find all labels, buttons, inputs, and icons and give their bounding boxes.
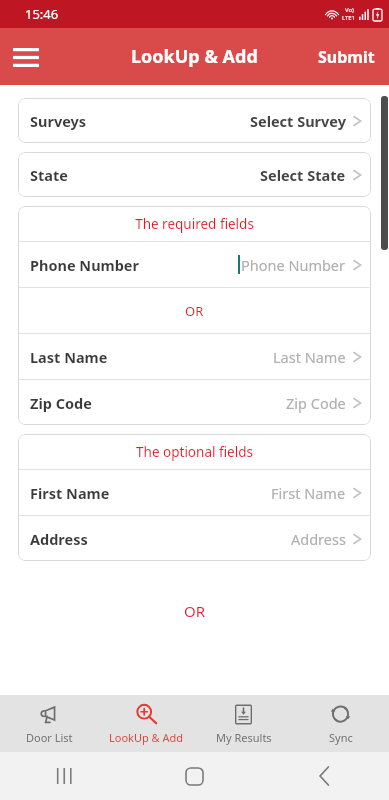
button[interactable]: Submit [318,46,375,68]
staticText: Last Name [30,347,108,367]
staticText: Phone Number [241,255,346,275]
button[interactable]: First Name [18,470,371,515]
staticText: Door List [26,730,73,745]
staticText: OR [185,302,204,320]
button[interactable]: Sync [292,703,389,745]
staticText: LTE1 [342,14,356,22]
staticText: LookUp & Add [131,44,258,69]
staticText: Submit [318,46,375,68]
staticText: The optional fields [136,443,253,461]
staticText: Vo) [345,6,354,14]
button[interactable]: Last Name [18,334,371,379]
button[interactable]: Address [18,516,371,561]
button[interactable]: Zip Code [18,380,371,425]
staticText: Zip Code [30,393,92,413]
staticText: The required fields [135,215,254,233]
staticText: Sync [329,730,353,745]
button[interactable]: LookUp & Add [98,703,195,745]
button[interactable]: Recents [0,768,129,784]
staticText: 15:46 [25,5,59,23]
staticText: Select State [260,165,346,185]
staticText: Select Survey [250,111,346,131]
staticText: Last Name [273,347,346,367]
staticText: State [30,165,68,185]
staticText: My Results [216,730,272,745]
button[interactable]: Home [129,768,259,785]
staticText: Zip Code [286,393,346,413]
staticText: LookUp & Add [109,730,184,745]
button[interactable]: Surveys [18,98,371,143]
button[interactable]: Menu [6,37,46,77]
staticText: First Name [30,483,110,503]
staticText: Phone Number [30,255,139,275]
staticText: First Name [271,483,346,503]
button[interactable]: Door List [0,703,98,745]
staticText: Surveys [30,111,87,131]
button[interactable]: My Results [195,703,292,745]
staticText: Address [30,529,88,549]
button[interactable]: Back [259,767,389,785]
button[interactable]: State [18,152,371,197]
staticText: OR [184,601,206,621]
staticText: Address [291,529,346,549]
button[interactable]: Phone Number [18,242,371,287]
